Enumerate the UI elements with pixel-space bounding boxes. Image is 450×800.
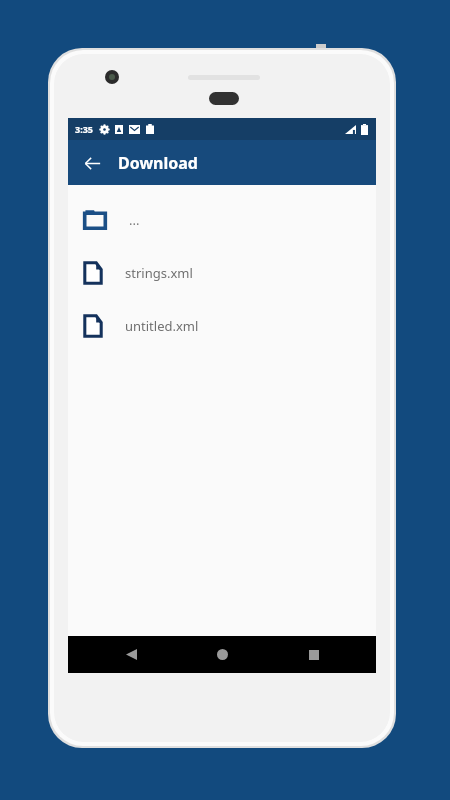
staticText: Download xyxy=(118,152,198,174)
button[interactable]: Back xyxy=(74,145,110,181)
staticText: untitled.xml xyxy=(125,317,199,335)
staticText: 3:35 xyxy=(75,123,93,135)
button[interactable]: Home xyxy=(193,636,251,673)
staticText: ... xyxy=(129,211,140,229)
button[interactable]: strings.xml xyxy=(68,246,376,299)
button[interactable]: Recents xyxy=(285,636,343,673)
button[interactable]: ... xyxy=(68,193,376,246)
button[interactable]: Back xyxy=(102,636,160,673)
staticText: strings.xml xyxy=(125,264,193,282)
button[interactable]: untitled.xml xyxy=(68,299,376,352)
